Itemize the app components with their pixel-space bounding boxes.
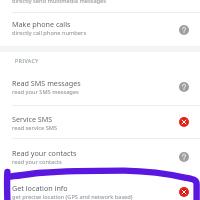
other: Permission unknown [179, 25, 189, 35]
button[interactable]: Make phone calls [0, 11, 200, 46]
other: Permission denied [179, 117, 189, 127]
staticText: read service SMS [12, 124, 58, 132]
staticText: read your SMS messages [12, 88, 79, 96]
button[interactable]: Read your contacts [0, 140, 200, 175]
button[interactable]: Read SMS messages [0, 70, 200, 105]
staticText: Service SMS [12, 114, 53, 124]
staticText: Read SMS messages [12, 78, 81, 88]
staticText: Get location info [12, 183, 68, 193]
staticText: directly send multimedia messages [12, 0, 107, 5]
staticText: Read your contacts [12, 148, 77, 158]
other: Permission unknown [179, 82, 189, 92]
staticText: get precise location (GPS and network ba… [12, 193, 133, 200]
button[interactable]: Get location info [0, 175, 200, 200]
staticText: Make phone calls [12, 19, 71, 29]
other: Permission denied [179, 187, 189, 197]
staticText: PRIVACY [15, 57, 39, 64]
other: Permission unknown [179, 152, 189, 162]
staticText: directly call phone numbers [12, 29, 87, 37]
button[interactable]: Service SMS [0, 106, 200, 139]
staticText: read your contacts [12, 158, 62, 166]
